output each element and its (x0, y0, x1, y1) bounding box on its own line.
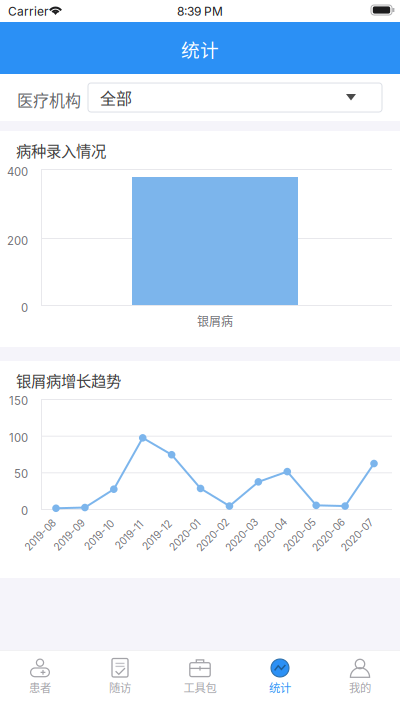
staticText: 2019-09 (50, 529, 89, 541)
staticText: 工具包 (183, 679, 216, 695)
staticText: 2020-07 (337, 529, 378, 541)
staticText: 随访 (109, 679, 131, 695)
button[interactable]: 我的 (320, 650, 400, 710)
staticText: 8:39 PM (177, 4, 223, 18)
staticText: 2019-11 (112, 529, 147, 541)
staticText: 200 (7, 234, 28, 248)
staticText: 100 (9, 431, 28, 445)
button[interactable]: 随访 (80, 650, 160, 710)
staticText: 2019-08 (21, 529, 60, 541)
staticText: 统计 (269, 679, 291, 695)
button[interactable]: 统计 (240, 650, 320, 710)
staticText: 全部 (100, 86, 132, 109)
staticText: 患者 (29, 679, 51, 695)
staticText: 病种录入情况 (16, 139, 106, 161)
staticText: 2020-04 (250, 529, 291, 541)
staticText: 0 (21, 301, 28, 315)
staticText: 50 (14, 467, 28, 481)
staticText: 2020-06 (308, 529, 349, 541)
staticText: 2019-10 (81, 529, 118, 541)
staticText: 2020-02 (192, 529, 233, 541)
staticText: 银屑病 (197, 312, 233, 329)
staticText: 医疗机构 (17, 88, 81, 111)
button[interactable]: 全部 (88, 83, 382, 112)
staticText: Carrier (8, 4, 49, 18)
staticText: 2019-12 (139, 529, 176, 541)
staticText: 150 (9, 394, 28, 408)
staticText: 400 (7, 165, 28, 179)
button[interactable]: 患者 (0, 650, 80, 710)
staticText: 0 (21, 504, 28, 518)
staticText: 2020-01 (165, 529, 204, 541)
staticText: 我的 (349, 679, 371, 695)
staticText: 统计 (181, 35, 219, 62)
staticText: 2020-05 (279, 529, 320, 541)
staticText: 银屑病增长趋势 (16, 369, 121, 391)
staticText: 2020-03 (221, 529, 262, 541)
button[interactable]: 工具包 (160, 650, 240, 710)
